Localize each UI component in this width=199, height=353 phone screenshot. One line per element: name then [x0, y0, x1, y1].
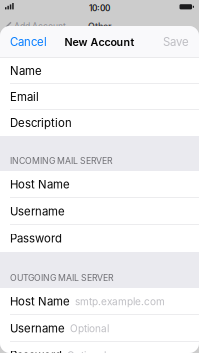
staticText: smtp.example.com: [75, 295, 165, 308]
button[interactable]: Username: [0, 315, 199, 342]
staticText: Optional: [70, 322, 109, 335]
button[interactable]: Host Name: [0, 171, 199, 198]
button[interactable]: Description: [0, 110, 199, 136]
staticText: INCOMING MAIL SERVER: [10, 155, 113, 166]
button[interactable]: Save: [153, 26, 199, 58]
staticText: OUTGOING MAIL SERVER: [10, 272, 114, 283]
staticText: Username: [10, 322, 65, 335]
button[interactable]: Password: [0, 342, 199, 353]
staticText: Host Name: [10, 295, 70, 308]
button[interactable]: Cancel: [0, 26, 57, 58]
staticText: Username: [10, 205, 65, 218]
button[interactable]: Username: [0, 198, 199, 225]
staticText: 10:00: [89, 3, 110, 13]
button[interactable]: Password: [0, 225, 199, 252]
staticText: Password: [10, 349, 62, 353]
staticText: Add Account: [14, 21, 66, 31]
staticText: Name: [10, 64, 42, 78]
button[interactable]: Host Name: [0, 288, 199, 315]
staticText: Email: [10, 90, 39, 104]
staticText: Password: [10, 232, 62, 245]
staticText: New Account: [64, 35, 134, 48]
staticText: Description: [10, 116, 72, 130]
staticText: Save: [163, 35, 189, 49]
staticText: Optional: [67, 349, 106, 353]
staticText: Cancel: [10, 35, 47, 49]
button[interactable]: Email: [0, 84, 199, 110]
button[interactable]: Name: [0, 58, 199, 84]
staticText: Host Name: [10, 178, 70, 191]
staticText: Other: [88, 21, 111, 32]
